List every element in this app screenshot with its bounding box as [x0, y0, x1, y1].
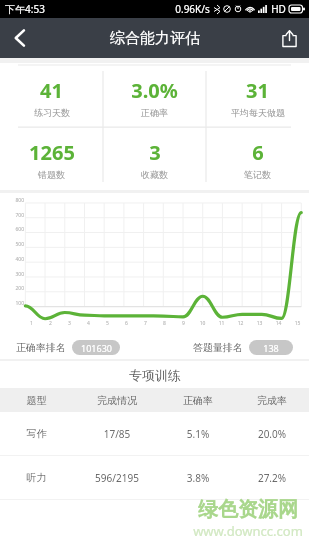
staticText: 专项训练 [129, 367, 181, 383]
staticText: 200 [2, 285, 24, 292]
staticText: 1265 [29, 139, 75, 166]
staticText: 6 [252, 139, 264, 166]
staticText: 12 [231, 320, 250, 327]
staticText: 300 [2, 271, 24, 278]
staticText: 综合能力评估 [110, 29, 200, 48]
staticText: 收藏数 [141, 169, 168, 180]
staticText: 600 [2, 226, 24, 233]
staticText: 101630 [81, 342, 112, 354]
staticText: 6 [117, 320, 136, 327]
button[interactable]: 3 [103, 128, 206, 190]
staticText: www.downcc.com [193, 522, 303, 540]
staticText: 0.96K/s [175, 2, 210, 16]
staticText: 写作 [0, 427, 73, 440]
staticText: 笔记数 [244, 169, 271, 180]
staticText: 596/2195 [73, 471, 161, 485]
staticText: 3 [60, 320, 79, 327]
staticText: 138 [263, 342, 279, 354]
staticText: 错题数 [38, 169, 65, 180]
staticText: HD [271, 2, 286, 16]
staticText: 听力 [0, 471, 73, 484]
staticText: 27.2% [235, 471, 309, 485]
staticText: 13 [250, 320, 269, 327]
staticText: 17/85 [73, 427, 161, 441]
staticText: 400 [2, 256, 24, 263]
staticText: 41 [40, 77, 63, 104]
staticText: 4 [79, 320, 98, 327]
staticText: 10 [193, 320, 212, 327]
staticText: 14 [269, 320, 288, 327]
staticText: 11 [212, 320, 231, 327]
staticText: 1 [22, 320, 41, 327]
button[interactable]: 31 [206, 67, 309, 128]
button[interactable]: 正确率排名 [16, 336, 120, 359]
button[interactable]: 写作 [0, 412, 309, 455]
staticText: 平均每天做题 [231, 107, 285, 118]
staticText: 3.0% [131, 77, 178, 104]
staticText: 5 [98, 320, 117, 327]
staticText: 正确率 [141, 107, 168, 118]
staticText: 700 [2, 212, 24, 219]
staticText: 题型 [0, 394, 73, 407]
staticText: 练习天数 [34, 107, 70, 118]
staticText: 3 [149, 139, 161, 166]
staticText: 8 [155, 320, 174, 327]
staticText: 7 [136, 320, 155, 327]
button[interactable]: Back [0, 18, 40, 58]
staticText: 800 [2, 197, 24, 204]
button[interactable]: 3.0% [103, 67, 206, 128]
staticText: 15 [288, 320, 307, 327]
staticText: 完成率 [235, 394, 309, 407]
staticText: 答题量排名 [193, 341, 243, 354]
staticText: 31 [246, 77, 269, 104]
staticText: 100 [2, 300, 24, 307]
button[interactable]: 1265 [0, 128, 103, 190]
staticText: 5.1% [161, 427, 235, 441]
staticText: 500 [2, 241, 24, 248]
button[interactable]: 答题量排名 [193, 336, 293, 359]
staticText: 9 [174, 320, 193, 327]
staticText: 20.0% [235, 427, 309, 441]
staticText: 绿色资源网 [198, 497, 298, 522]
staticText: 3.8% [161, 471, 235, 485]
button[interactable]: 听力 [0, 456, 309, 499]
button[interactable]: Share [269, 18, 309, 58]
staticText: 下午4:53 [5, 2, 45, 16]
staticText: 正确率排名 [16, 341, 66, 354]
button[interactable]: 41 [0, 67, 103, 128]
staticText: 完成情况 [73, 394, 161, 407]
button[interactable]: 6 [206, 128, 309, 190]
staticText: 正确率 [161, 394, 235, 407]
staticText: 2 [41, 320, 60, 327]
